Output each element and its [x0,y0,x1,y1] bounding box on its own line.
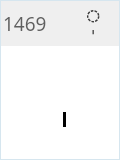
button[interactable]: Text editor [1,46,119,159]
button[interactable]: Search [81,3,107,43]
staticText: 1469 [3,11,47,37]
